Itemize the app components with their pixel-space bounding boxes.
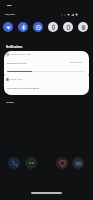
button[interactable]: Flashlight: [48, 22, 58, 32]
staticText: Manage: [6, 101, 14, 104]
button[interactable]: Bluetooth: [18, 22, 28, 32]
staticText: Notifications: [6, 45, 23, 49]
button[interactable]: Messages: [25, 157, 37, 169]
button[interactable]: Tap to cancel: [70, 61, 83, 64]
button[interactable]: Phone • now: [4, 75, 89, 95]
staticText: Checking for new voicemail: [7, 86, 40, 89]
staticText: Tue, Dec 1: [5, 13, 16, 16]
button[interactable]: Phone: [8, 157, 20, 169]
staticText: 9:30: [7, 4, 12, 7]
staticText: Phone • now: [10, 78, 22, 81]
staticText: Android System • now: [10, 53, 31, 56]
staticText: Restoring locale...: [7, 61, 28, 64]
button[interactable]: Manage: [6, 99, 14, 105]
button[interactable]: Android System • now: [4, 51, 89, 75]
button[interactable]: Browser: [56, 157, 68, 169]
button[interactable]: Auto-rotate: [63, 22, 73, 32]
staticText: Tap to cancel: [70, 61, 83, 64]
button[interactable]: Battery Saver: [78, 22, 88, 32]
button[interactable]: Do Not Disturb: [33, 22, 43, 32]
button[interactable]: Camera: [72, 157, 84, 169]
button[interactable]: Internet: [3, 22, 13, 32]
